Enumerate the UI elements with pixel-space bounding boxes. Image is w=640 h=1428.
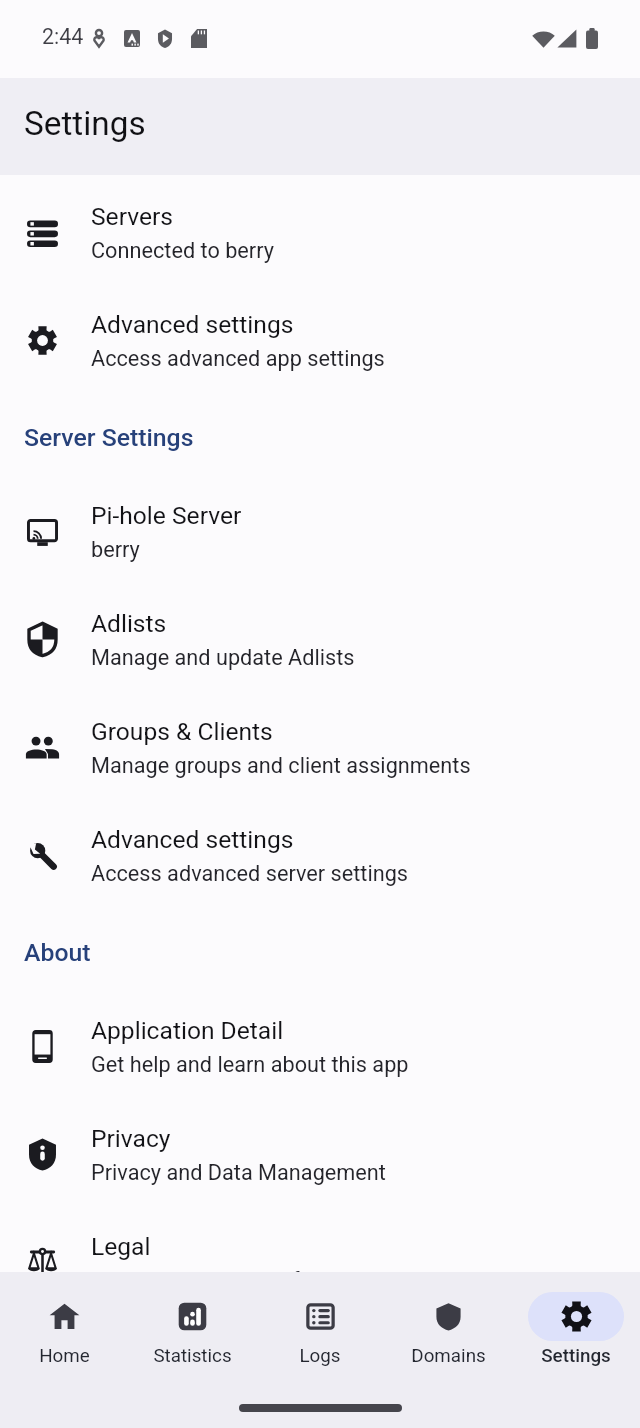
- staticText: Connected to berry: [91, 238, 274, 263]
- staticText: Legal: [91, 1232, 151, 1261]
- staticText: Application Detail: [91, 1016, 284, 1045]
- staticText: Privacy and Data Management: [91, 1160, 386, 1185]
- staticText: 2:44: [42, 24, 84, 49]
- button[interactable]: Servers: [0, 178, 640, 286]
- staticText: Access advanced app settings: [91, 346, 385, 371]
- staticText: Privacy: [91, 1124, 171, 1153]
- button[interactable]: Settings: [512, 1272, 640, 1367]
- staticText: Groups & Clients: [91, 717, 273, 746]
- button[interactable]: Advanced settings: [0, 286, 640, 394]
- staticText: Pi-hole Server: [91, 501, 242, 530]
- staticText: Server Settings: [24, 423, 194, 452]
- staticText: Domains: [411, 1345, 486, 1367]
- staticText: Adlists: [91, 609, 167, 638]
- button[interactable]: Legal: [0, 1208, 640, 1272]
- staticText: Home: [39, 1345, 90, 1367]
- staticText: About: [24, 938, 91, 967]
- button[interactable]: Adlists: [0, 585, 640, 693]
- button[interactable]: Application Detail: [0, 992, 640, 1100]
- button[interactable]: Logs: [256, 1272, 384, 1367]
- button[interactable]: Domains: [384, 1272, 512, 1367]
- staticText: Manage and update Adlists: [91, 645, 355, 670]
- staticText: Settings: [24, 104, 146, 143]
- staticText: Get help and learn about this app: [91, 1052, 409, 1077]
- staticText: berry: [91, 537, 140, 562]
- button[interactable]: Home: [0, 1272, 128, 1367]
- staticText: Statistics: [153, 1345, 232, 1367]
- staticText: Access advanced server settings: [91, 861, 409, 886]
- staticText: Settings: [541, 1345, 611, 1367]
- button[interactable]: Pi-hole Server: [0, 477, 640, 585]
- staticText: Manage groups and client assignments: [91, 753, 471, 778]
- button[interactable]: Advanced settings: [0, 801, 640, 909]
- staticText: Advanced settings: [91, 310, 294, 339]
- button[interactable]: Statistics: [128, 1272, 256, 1367]
- staticText: Licenses and legal information: [91, 1268, 387, 1272]
- button[interactable]: Privacy: [0, 1100, 640, 1208]
- button[interactable]: Groups & Clients: [0, 693, 640, 801]
- staticText: Servers: [91, 202, 174, 231]
- staticText: Logs: [299, 1345, 341, 1367]
- staticText: Advanced settings: [91, 825, 294, 854]
